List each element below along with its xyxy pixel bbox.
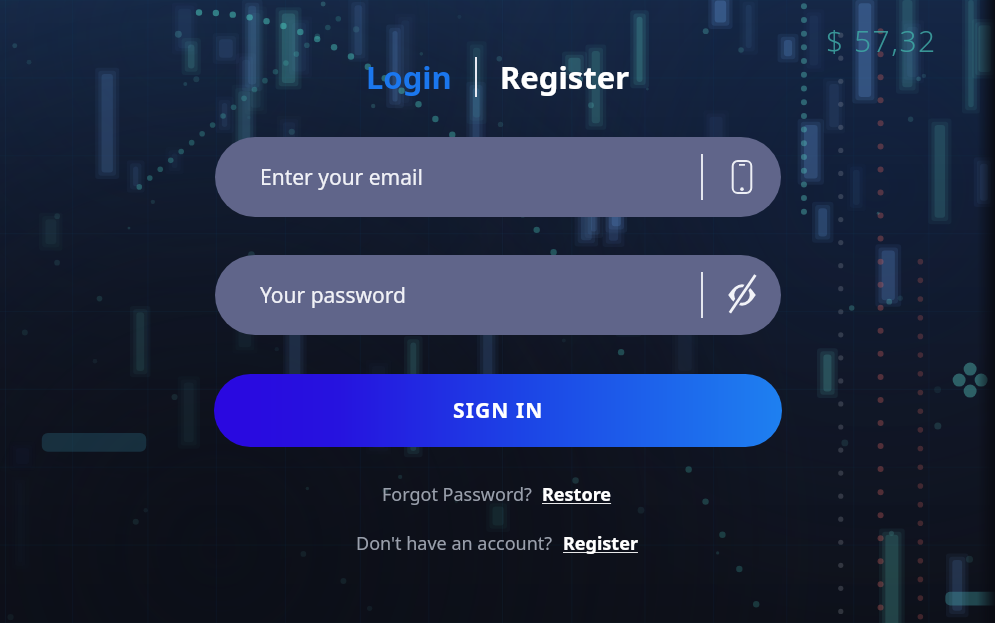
button[interactable]: Show password bbox=[703, 255, 781, 335]
staticText: Your password bbox=[260, 281, 406, 310]
button[interactable]: Restore bbox=[540, 480, 614, 509]
button[interactable]: Login bbox=[356, 52, 462, 102]
staticText: Login bbox=[366, 56, 452, 98]
button[interactable]: Your password bbox=[215, 255, 781, 335]
staticText: $ 57,32 bbox=[826, 20, 937, 61]
button[interactable]: Use phone number bbox=[703, 137, 781, 217]
button[interactable]: Register bbox=[561, 529, 640, 558]
button[interactable]: SIGN IN bbox=[214, 374, 782, 447]
button[interactable]: Enter your email bbox=[215, 137, 781, 217]
staticText: Don't have an account? bbox=[356, 531, 553, 556]
staticText: Register bbox=[500, 56, 630, 98]
staticText: Forgot Password? bbox=[382, 482, 532, 507]
button[interactable]: Register bbox=[490, 52, 640, 102]
staticText: Restore bbox=[542, 482, 612, 507]
staticText: Register bbox=[563, 531, 638, 556]
staticText: SIGN IN bbox=[453, 396, 544, 425]
staticText: Enter your email bbox=[260, 163, 423, 192]
